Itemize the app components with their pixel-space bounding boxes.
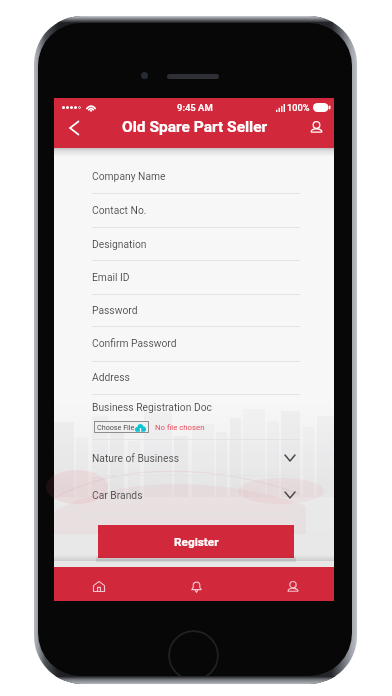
staticText: Address (92, 371, 130, 383)
staticText: No file chosen (155, 423, 205, 432)
button[interactable]: Profile (280, 570, 306, 604)
button[interactable]: Home (86, 569, 112, 603)
button[interactable]: Back (54, 112, 94, 144)
button[interactable]: Register (98, 525, 294, 558)
staticText: Register (174, 535, 219, 549)
staticText: Designation (92, 238, 147, 250)
staticText: Business Registration Doc (92, 401, 212, 413)
button[interactable]: Business Registration Doc (54, 395, 334, 438)
staticText: Nature of Business (92, 452, 180, 464)
button[interactable]: Address (54, 362, 334, 394)
staticText: Car Brands (92, 489, 143, 501)
button[interactable]: Notifications (183, 569, 209, 603)
button[interactable]: Password (54, 295, 334, 326)
staticText: Password (92, 304, 138, 316)
button[interactable]: Account (298, 112, 334, 144)
button[interactable]: Email ID (54, 261, 334, 294)
button[interactable]: Company Name (54, 160, 334, 193)
button[interactable]: Contact No. (54, 194, 334, 227)
button[interactable]: Confirm Password (54, 327, 334, 361)
staticText: 9:45 AM (177, 102, 213, 113)
button[interactable]: Car Brands (54, 476, 334, 513)
staticText: Company Name (92, 170, 166, 182)
staticText: Confirm Password (92, 337, 177, 349)
staticText: Old Spare Part Seller (122, 118, 268, 136)
button[interactable]: Nature of Business (54, 440, 334, 476)
staticText: Choose File (97, 423, 135, 431)
other: Home button (168, 630, 219, 676)
staticText: 100% (287, 102, 310, 113)
button[interactable]: Designation (54, 228, 334, 261)
staticText: Contact No. (92, 204, 147, 216)
staticText: Email ID (92, 271, 130, 283)
